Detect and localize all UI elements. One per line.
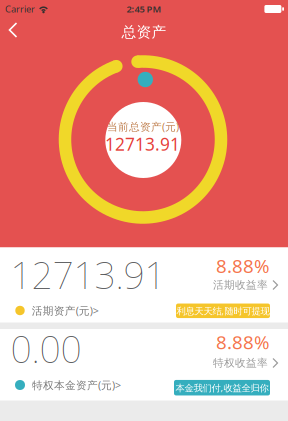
button[interactable]: 特权本金资产(元)>: [15, 378, 121, 392]
staticText: Carrier: [5, 3, 35, 15]
staticText: 0.00: [10, 324, 81, 373]
button[interactable]: 特权收益率: [213, 356, 279, 369]
staticText: 特权本金资产(元)>: [32, 378, 121, 392]
button[interactable]: [2, 16, 24, 44]
staticText: 12713.91: [10, 250, 165, 299]
staticText: 当前总资产(元): [107, 119, 179, 134]
staticText: 12713.91: [105, 132, 180, 155]
staticText: 8.88%: [216, 330, 270, 354]
staticText: 总资产: [121, 23, 166, 41]
button[interactable]: 活期资产(元)>: [15, 303, 99, 318]
staticText: 2:45 PM: [126, 3, 161, 15]
staticText: 活期资产(元)>: [32, 303, 99, 318]
staticText: 8.88%: [216, 253, 270, 278]
staticText: 利息天天结,随时可提现: [176, 305, 269, 317]
staticText: 特权收益率: [213, 356, 268, 369]
staticText: 活期收益率: [213, 278, 268, 291]
button[interactable]: 活期收益率: [213, 278, 279, 291]
staticText: 本金我们付,收益全归你: [175, 381, 268, 394]
button[interactable]: 利息天天结,随时可提现: [176, 304, 270, 318]
button[interactable]: 本金我们付,收益全归你: [174, 380, 270, 395]
